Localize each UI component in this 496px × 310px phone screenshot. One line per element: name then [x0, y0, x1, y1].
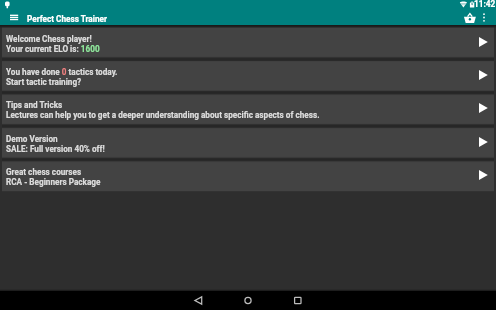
- button[interactable]: You have done 0 tactics today.: [2, 61, 494, 91]
- button[interactable]: Home: [229, 291, 267, 310]
- staticText: Demo Version: [6, 134, 58, 144]
- staticText: You have done 0 tactics today.: [6, 67, 118, 77]
- staticText: Great chess courses: [6, 167, 82, 177]
- button[interactable]: Demo Version: [2, 128, 494, 158]
- staticText: 11:42: [474, 0, 496, 9]
- button[interactable]: Open navigation drawer: [0, 11, 24, 25]
- staticText: Start tactic training?: [6, 77, 82, 87]
- button[interactable]: Welcome Chess player!: [2, 28, 494, 58]
- button[interactable]: Great chess courses: [2, 161, 494, 191]
- button[interactable]: Tips and Tricks: [2, 94, 494, 124]
- staticText: Tips and Tricks: [6, 100, 63, 110]
- staticText: Lectures can help you to get a deeper un…: [6, 110, 320, 120]
- staticText: Your current ELO is: 1600: [6, 44, 100, 54]
- button[interactable]: Recent apps: [279, 291, 317, 310]
- staticText: Perfect Chess Trainer: [27, 14, 107, 24]
- button[interactable]: More options: [479, 11, 491, 25]
- staticText: RCA - Beginners Package: [6, 177, 101, 187]
- button[interactable]: Back: [180, 291, 218, 310]
- staticText: SALE: Full version 40% off!: [6, 144, 105, 154]
- button[interactable]: Shop: [461, 11, 479, 25]
- staticText: Welcome Chess player!: [6, 34, 92, 44]
